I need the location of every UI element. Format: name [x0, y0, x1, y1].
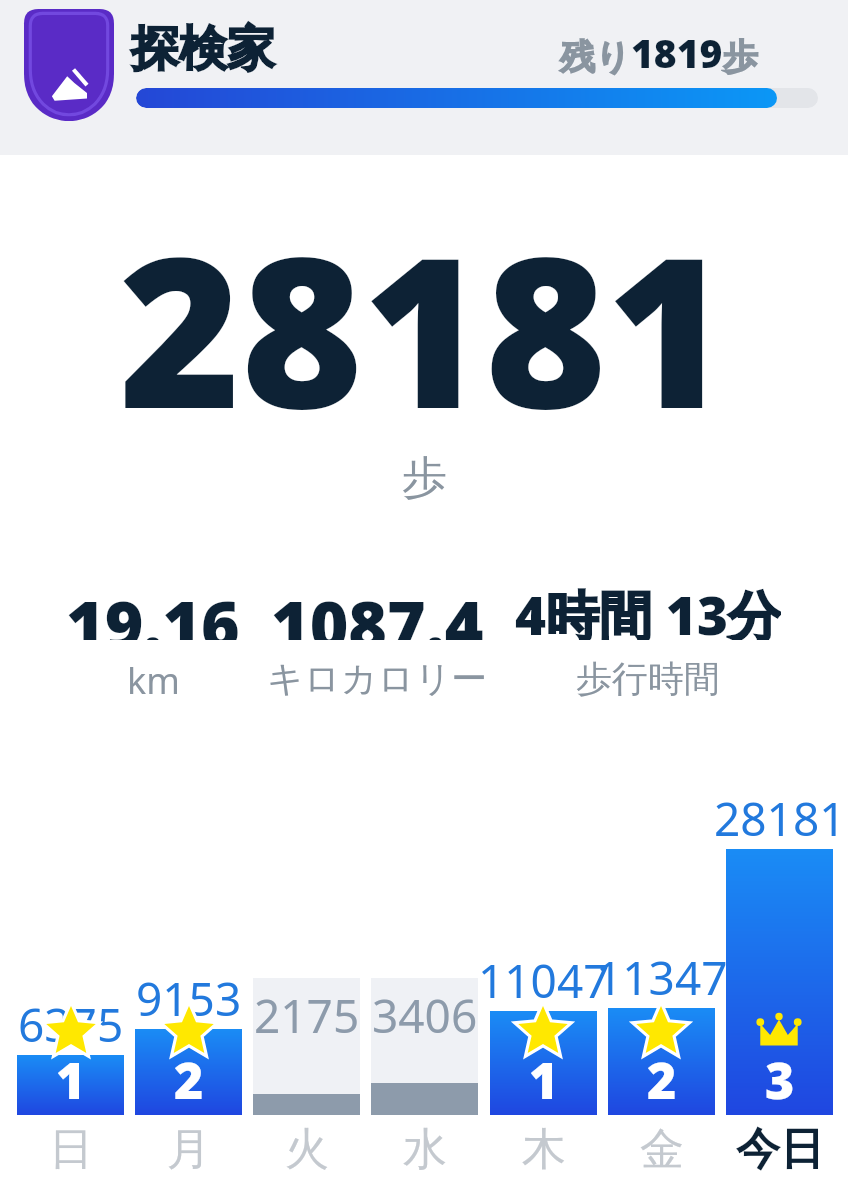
staticText: 火 [285, 1122, 329, 1177]
staticText: 1 [529, 1046, 559, 1114]
button[interactable] [136, 88, 818, 108]
staticText: 2 [647, 1046, 677, 1114]
staticText: 今日 [736, 1122, 824, 1177]
button[interactable] [490, 1011, 597, 1115]
staticText: 1087.4 [271, 578, 484, 640]
button[interactable] [17, 1055, 124, 1115]
staticText: キロカロリー [267, 656, 488, 701]
staticText: 月 [167, 1122, 211, 1177]
staticText: 金 [640, 1122, 684, 1177]
button[interactable] [135, 1029, 242, 1115]
staticText: 28181 [119, 186, 729, 469]
button[interactable]: 探検家 [131, 19, 275, 79]
staticText: 3 [765, 1046, 795, 1114]
staticText: 11347 [596, 946, 728, 1009]
button[interactable]: 30K achievement badge [24, 9, 114, 121]
button[interactable]: 19.16 [55, 578, 251, 705]
button[interactable] [726, 849, 833, 1115]
staticText: 11047 [478, 949, 610, 1012]
staticText: 歩 [402, 450, 447, 507]
button[interactable] [608, 1008, 715, 1115]
staticText: 残り [560, 35, 631, 79]
button[interactable]: 1087.4 [251, 578, 503, 701]
staticText: 1 [56, 1046, 86, 1114]
staticText: 19.16 [66, 578, 240, 640]
staticText: 3406 [372, 984, 478, 1047]
staticText: 歩行時間 [576, 656, 720, 701]
staticText: 2175 [254, 984, 360, 1047]
staticText: 28181 [714, 787, 846, 850]
staticText: 1819 [631, 26, 723, 79]
staticText: 歩 [723, 35, 758, 79]
button[interactable]: 4時間 13分 [503, 578, 793, 701]
staticText: 9153 [136, 967, 242, 1030]
staticText: km [127, 656, 180, 705]
staticText: 日 [49, 1122, 93, 1177]
staticText: 2 [174, 1046, 204, 1114]
staticText: 木 [522, 1122, 566, 1177]
staticText: 4時間 13分 [515, 578, 781, 640]
staticText: 水 [403, 1122, 447, 1177]
staticText: 6375 [18, 993, 124, 1056]
